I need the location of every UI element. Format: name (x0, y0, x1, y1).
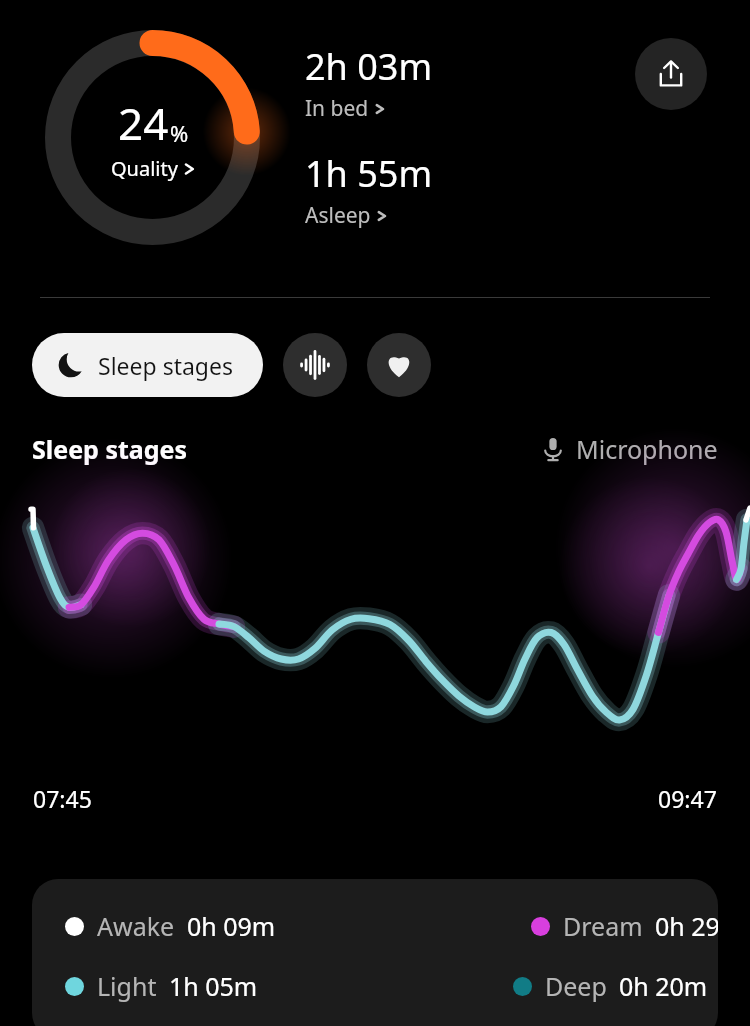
staticText: 07:45 (33, 783, 92, 814)
staticText: Dream (563, 909, 643, 943)
staticText: Awake (97, 909, 175, 943)
button[interactable]: In bed (305, 94, 385, 123)
button[interactable]: Sleep stages (32, 333, 263, 397)
staticText: Deep (545, 969, 607, 1003)
button[interactable]: Awake (32, 879, 718, 1026)
staticText: 09:47 (658, 783, 717, 814)
staticText: 0h 09m (187, 909, 276, 943)
staticText: 1h 05m (169, 969, 258, 1003)
button[interactable]: Heart rate (367, 333, 431, 397)
button[interactable]: 24 (40, 25, 265, 250)
staticText: 1h 55m (305, 149, 433, 198)
staticText: Sleep stages (32, 432, 188, 466)
staticText: Quality (111, 155, 178, 182)
staticText: In bed (305, 94, 369, 123)
staticText: % (170, 118, 189, 148)
button[interactable]: Share (635, 38, 707, 110)
staticText: 0h 20m (619, 969, 708, 1003)
staticText: 2h 03m (305, 42, 433, 91)
staticText: Asleep (305, 201, 371, 230)
staticText: Microphone (576, 432, 718, 466)
staticText: 24 (118, 93, 169, 153)
button[interactable]: Sleep sounds (283, 333, 347, 397)
button[interactable]: Microphone (540, 432, 718, 466)
button[interactable]: Asleep (305, 201, 387, 230)
staticText: Light (97, 969, 157, 1003)
staticText: Sleep stages (98, 350, 233, 381)
staticText: 0h 29m (655, 909, 718, 943)
